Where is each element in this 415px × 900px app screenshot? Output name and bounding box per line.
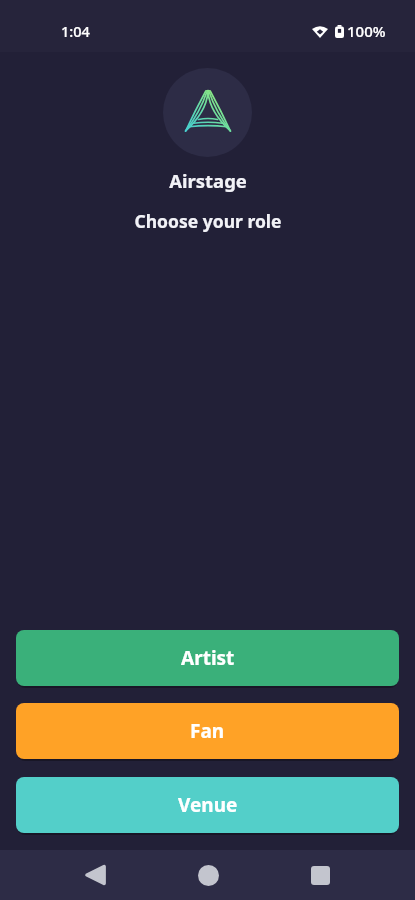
button[interactable]: Home <box>185 852 231 898</box>
staticText: 100% <box>347 21 386 41</box>
staticText: Venue <box>178 792 238 818</box>
staticText: Fan <box>190 718 225 744</box>
button[interactable]: Venue <box>16 777 399 833</box>
staticText: Airstage <box>169 168 247 193</box>
staticText: Choose your role <box>134 209 282 233</box>
staticText: Artist <box>181 645 235 671</box>
button[interactable]: Artist <box>16 630 399 686</box>
button[interactable]: Recent apps <box>297 852 343 898</box>
staticText: 1:04 <box>61 21 90 41</box>
button[interactable]: Fan <box>16 703 399 759</box>
button[interactable]: Back <box>72 852 118 898</box>
